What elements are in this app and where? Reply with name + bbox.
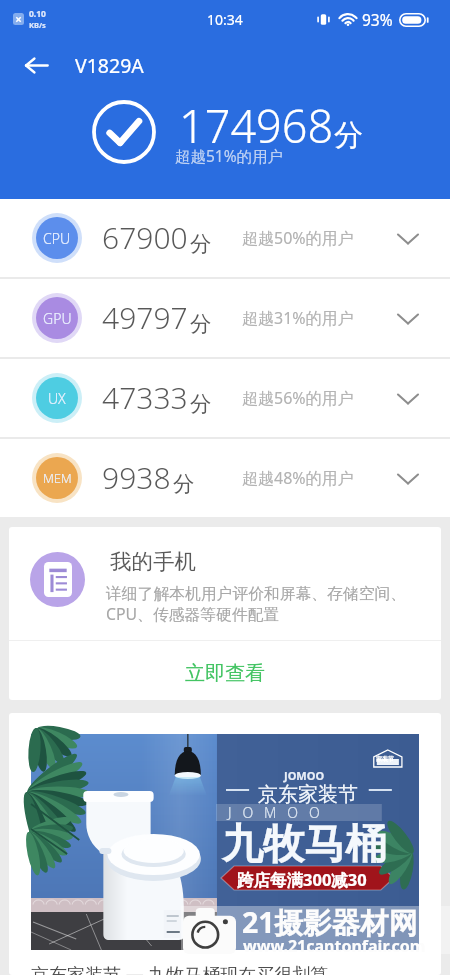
staticText: 立即查看 <box>185 661 265 686</box>
other: Expand details <box>388 219 428 259</box>
staticText: 九牧马桶 <box>222 819 386 871</box>
button[interactable]: 立即查看 <box>9 641 441 700</box>
staticText: MEM <box>43 470 72 487</box>
staticText: 10:34 <box>207 10 243 29</box>
button[interactable]: GPU <box>0 279 450 357</box>
other: Expand details <box>388 379 428 419</box>
other: Expand details <box>388 459 428 499</box>
staticText: JOMOO <box>284 768 325 783</box>
staticText: 超越31%的用户 <box>242 307 354 329</box>
staticText: 详细了解本机用户评价和屏幕、存储空间、 CPU、传感器等硬件配置 <box>106 584 407 624</box>
staticText: GPU <box>43 309 72 328</box>
staticText: 我的手机 <box>110 548 196 575</box>
staticText: V1829A <box>75 52 144 79</box>
button[interactable]: 我的手机 <box>9 527 441 640</box>
staticText: 0.10 <box>29 8 46 20</box>
staticText: 93% <box>362 9 393 30</box>
button[interactable]: Back <box>9 38 63 92</box>
staticText: 67900 <box>102 217 188 258</box>
other: Expand details <box>388 299 428 339</box>
staticText: 家装节 <box>376 755 394 763</box>
button[interactable]: CPU <box>0 199 450 277</box>
staticText: 174968 <box>179 95 334 156</box>
button[interactable]: MEM <box>0 439 450 517</box>
staticText: KB/s <box>29 20 46 30</box>
staticText: 21摄影器材网 <box>242 903 418 942</box>
staticText: CPU <box>43 229 71 248</box>
staticText: www.21cantonfair.com <box>243 935 426 957</box>
staticText: 47333 <box>102 377 188 418</box>
staticText: 分 <box>190 230 212 257</box>
staticText: J O M O O <box>228 803 320 822</box>
staticText: 超越51%的用户 <box>175 145 284 166</box>
staticText: 49797 <box>102 297 188 338</box>
staticText: 超越48%的用户 <box>242 467 354 489</box>
staticText: 9938 <box>102 457 171 498</box>
button[interactable]: JOMOO <box>9 713 441 975</box>
staticText: 分 <box>190 310 212 337</box>
staticText: 超越50%的用户 <box>242 227 354 249</box>
staticText: 分 <box>173 470 195 497</box>
staticText: 跨店每满300减30 <box>237 868 367 891</box>
staticText: 分 <box>334 117 363 154</box>
staticText: 分 <box>190 390 212 417</box>
button[interactable]: UX <box>0 359 450 437</box>
staticText: 超越56%的用户 <box>242 387 354 409</box>
staticText: 京东家装节 — 九牧马桶现在买很划算 <box>31 962 329 975</box>
staticText: 京东家装节 <box>258 782 358 807</box>
staticText: UX <box>48 389 66 408</box>
